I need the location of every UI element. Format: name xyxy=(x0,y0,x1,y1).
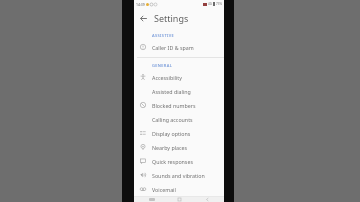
button[interactable]: Home xyxy=(169,197,189,202)
button[interactable]: Assisted dialing xyxy=(134,84,224,98)
staticText: Assisted dialing xyxy=(152,88,191,95)
button[interactable]: Caller ID & spam xyxy=(134,40,224,54)
staticText: 4G xyxy=(208,2,212,6)
button[interactable]: Recents xyxy=(142,197,162,202)
button[interactable]: Sounds and vibration xyxy=(134,168,224,182)
staticText: 14:39 xyxy=(136,2,145,7)
staticText: Nearby places xyxy=(152,144,188,151)
button[interactable]: Nearby places xyxy=(134,140,224,154)
button[interactable]: Calling accounts xyxy=(134,112,224,126)
staticText: GENERAL xyxy=(152,63,173,68)
staticText: Display options xyxy=(152,130,191,137)
staticText: Settings xyxy=(154,12,189,24)
staticText: 73% xyxy=(216,2,222,6)
staticText: Quick responses xyxy=(152,158,193,165)
staticText: Sounds and vibration xyxy=(152,172,205,179)
button[interactable]: Blocked numbers xyxy=(134,98,224,112)
button[interactable]: Back xyxy=(136,11,151,26)
staticText: Blocked numbers xyxy=(152,102,196,109)
staticText: ASSISTIVE xyxy=(152,33,175,38)
button[interactable]: Accessibility xyxy=(134,70,224,84)
staticText: Caller ID & spam xyxy=(152,44,194,51)
staticText: Calling accounts xyxy=(152,116,193,123)
button[interactable]: Quick responses xyxy=(134,154,224,168)
button[interactable]: Voicemail xyxy=(134,182,224,196)
staticText: Voicemail xyxy=(152,186,176,193)
button[interactable]: Back xyxy=(197,197,217,202)
button[interactable]: Display options xyxy=(134,126,224,140)
staticText: Accessibility xyxy=(152,74,182,81)
